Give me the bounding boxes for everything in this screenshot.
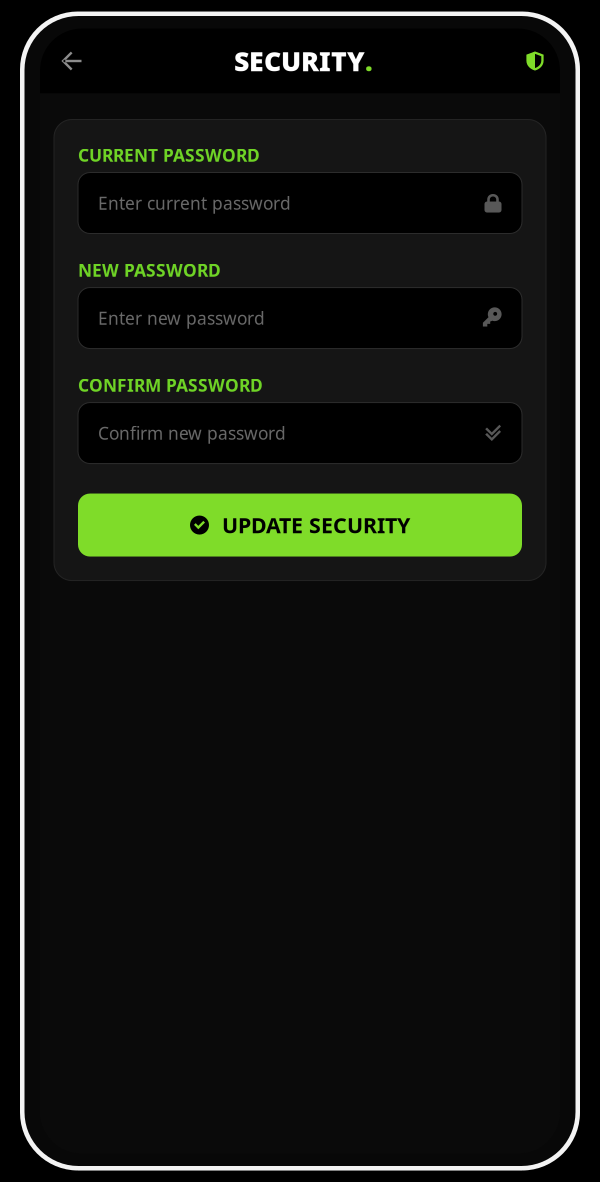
staticText: CONFIRM PASSWORD [78,373,263,396]
button[interactable]: Enter new password [78,287,522,348]
staticText: Confirm new password [98,421,286,444]
staticText: . [365,43,373,79]
button[interactable]: Back [52,41,92,81]
staticText: SECURITY [234,43,365,79]
button[interactable]: Security status [515,41,555,81]
staticText: UPDATE SECURITY [222,511,410,539]
staticText: NEW PASSWORD [78,258,221,281]
staticText: Enter current password [98,191,291,214]
button[interactable]: UPDATE SECURITY [78,494,522,557]
button[interactable]: Confirm new password [78,403,522,464]
button[interactable]: Enter current password [78,172,522,233]
staticText: CURRENT PASSWORD [78,143,260,166]
staticText: Enter new password [98,306,265,329]
